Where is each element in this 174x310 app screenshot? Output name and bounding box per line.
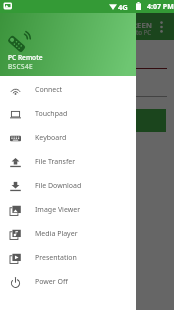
button[interactable]: Presentation [0,246,136,270]
staticText: 4:07 PM [147,2,174,12]
button[interactable]: More options [152,19,168,35]
button[interactable]: File Download [0,174,136,198]
staticText: PC REMOTE SCREEN [77,20,152,30]
staticText: Connect [35,85,63,95]
staticText: File Download [35,181,82,191]
staticText: 4G [118,2,128,12]
staticText: PC Remote [8,53,43,62]
button[interactable]: Connect [0,78,136,102]
staticText: Touchpad [35,109,68,119]
button[interactable]: Touchpad [0,102,136,126]
button[interactable] [100,109,166,132]
button[interactable]: File Transfer [0,150,136,174]
staticText: Power Off [35,277,68,287]
button[interactable]: Media Player [0,222,136,246]
button[interactable]: Image Viewer [0,198,136,222]
staticText: File Transfer [35,157,76,167]
staticText: Media Player [35,229,78,239]
staticText: Keyboard [35,133,67,143]
button[interactable]: Keyboard [0,126,136,150]
staticText: Presentation [35,253,77,263]
staticText: BSCS4E [8,62,34,71]
button[interactable]: Power Off [0,270,136,294]
staticText: Connected to PC [103,28,152,36]
staticText: Image Viewer [35,205,81,215]
